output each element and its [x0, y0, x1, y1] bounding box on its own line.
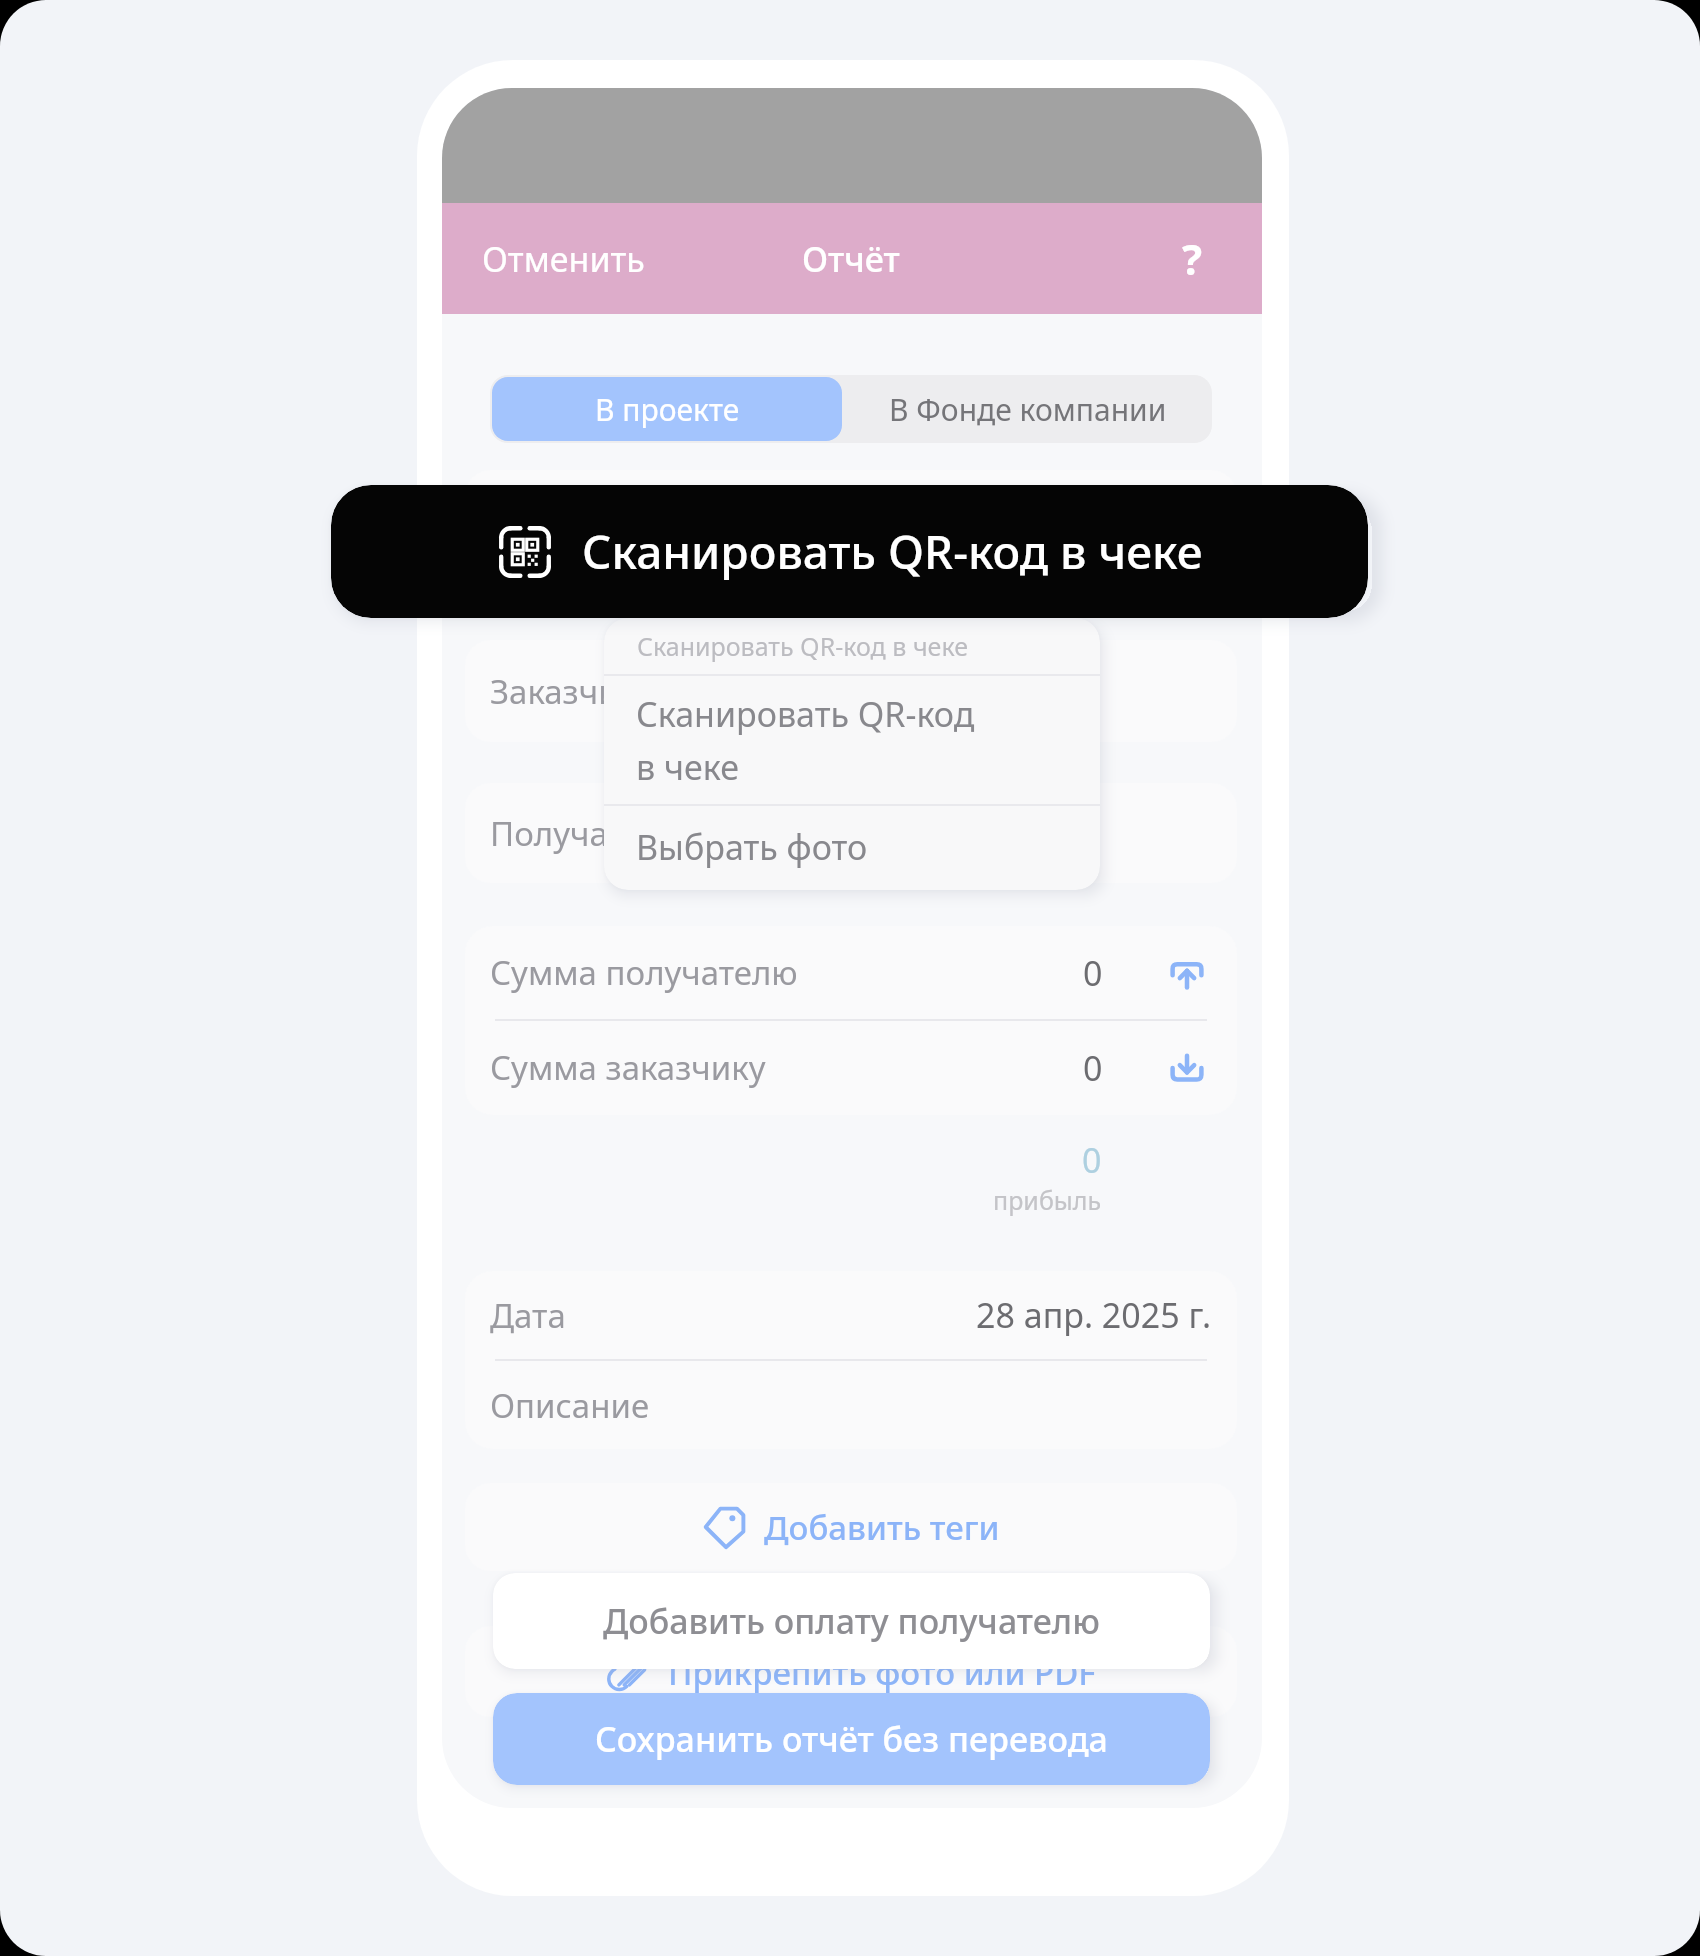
staticText: В Фонде компании: [889, 389, 1167, 430]
staticText: Получатель: [490, 811, 678, 856]
button[interactable]: Сумма получателю: [465, 926, 1237, 1019]
staticText: Сохранить отчёт без перевода: [595, 1716, 1108, 1762]
button[interactable]: Выбрать фото: [604, 806, 1100, 888]
button[interactable]: Сохранить отчёт без перевода: [493, 1693, 1210, 1785]
button[interactable]: Help: [1162, 203, 1222, 314]
button[interactable]: Добавить теги: [465, 1483, 1237, 1571]
staticText: прибыль: [993, 1183, 1102, 1217]
staticText: Дата: [490, 1293, 566, 1338]
other: Income: [1169, 1050, 1205, 1086]
other: Payout: [1169, 955, 1205, 991]
button[interactable]: Сканировать QR-код в чеке: [331, 485, 1368, 618]
staticText: 0: [1083, 950, 1103, 996]
staticText: Выбрать фото: [636, 824, 868, 870]
button[interactable]: Заказчик: [465, 640, 1237, 742]
button[interactable]: Прикрепить фото или PDF: [465, 1626, 1237, 1717]
button[interactable]: В проекте: [492, 377, 842, 441]
staticText: 28 апр. 2025 г.: [976, 1292, 1212, 1338]
staticText: Добавить оплату получателю: [603, 1598, 1100, 1644]
staticText: Сканировать QR-код в чеке: [582, 520, 1203, 583]
staticText: Заказчик: [490, 669, 637, 714]
staticText: Сумма заказчику: [490, 1045, 766, 1090]
staticText: Сумма получателю: [490, 950, 798, 995]
staticText: Прикрепить фото или PDF: [668, 1650, 1096, 1695]
staticText: В проекте: [595, 389, 740, 430]
button[interactable]: Описание: [465, 1361, 1237, 1449]
button[interactable]: Сумма заказчику: [465, 1021, 1237, 1114]
staticText: Отменить: [482, 236, 645, 282]
staticText: Добавить теги: [764, 1505, 1000, 1550]
staticText: 0: [1082, 1137, 1102, 1183]
button[interactable]: В Фонде компании: [844, 375, 1212, 443]
staticText: ?: [1182, 230, 1203, 287]
staticText: Описание: [490, 1383, 650, 1428]
button[interactable]: Дата: [465, 1271, 1237, 1359]
button[interactable]: Получатель: [465, 783, 1237, 883]
staticText: Сканировать QR-код в чеке: [637, 629, 968, 663]
staticText: 0: [1083, 1045, 1103, 1091]
button[interactable]: [465, 470, 1237, 574]
button[interactable]: Сканировать QR-код в чеке: [604, 676, 1100, 804]
button[interactable]: Отменить: [482, 203, 662, 314]
staticText: Сканировать QR-код в чеке: [636, 691, 975, 790]
button[interactable]: Добавить оплату получателю: [493, 1573, 1210, 1669]
staticText: Отчёт: [802, 236, 900, 282]
